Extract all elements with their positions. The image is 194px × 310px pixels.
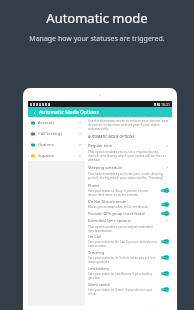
staticText: > (79, 153, 82, 158)
staticText: Sets your status to 'Busy' if you are on… (88, 189, 159, 197)
staticText: This option enables you to set your usua… (88, 172, 169, 180)
staticText: > (166, 165, 169, 170)
staticText: Extended Sync options (88, 218, 131, 223)
staticText: > (79, 131, 82, 136)
staticText: Used in Automatic mode to enforce your d… (88, 119, 169, 131)
staticText: AUTOMATIC MODE OPTIONS (88, 134, 135, 139)
staticText: Sets your status to Low Battery if your … (88, 272, 159, 280)
button[interactable]: Toggle (161, 202, 169, 207)
button[interactable]: Toggle (161, 271, 169, 276)
button[interactable]: Support (28, 150, 85, 161)
staticText: Sleeping schedule (88, 165, 122, 170)
button[interactable]: Do Not Disturb mode (88, 199, 169, 209)
button[interactable]: Toggle (161, 239, 169, 244)
button[interactable]: Navigate up (31, 109, 38, 116)
button[interactable]: Options (28, 139, 85, 150)
staticText: > (166, 218, 169, 223)
button[interactable]: Account (28, 117, 85, 128)
button[interactable]: Regular time (88, 142, 169, 149)
staticText: This option enables you to adjust extend… (88, 225, 169, 233)
button[interactable]: Toggle (161, 287, 169, 292)
button[interactable]: Call Settings (28, 128, 85, 139)
staticText: Traveling (88, 250, 105, 255)
staticText: Sets your status to On Call if you are a… (88, 240, 159, 248)
staticText: Account (38, 120, 54, 126)
staticText: > (166, 143, 169, 148)
staticText: > (79, 120, 82, 125)
button[interactable]: Toggle (161, 211, 169, 216)
staticText: Manage how your statuses are triggered. (29, 34, 165, 44)
staticText: Automatic Mode Options (39, 109, 99, 116)
staticText: Support (38, 153, 54, 159)
staticText: Sets your status to 'Silent' if your dev… (88, 288, 159, 296)
staticText: Marks you as away when in Do not disturb… (88, 205, 149, 209)
staticText: This option enables you to set a regular… (88, 150, 169, 162)
button[interactable]: Silent switch (88, 282, 169, 296)
staticText: Do Not Disturb mode (88, 199, 127, 204)
staticText: > (79, 142, 82, 147)
staticText: Low battery (88, 266, 110, 271)
button[interactable]: On Call (88, 234, 169, 248)
staticText: Periodic GPS group check (beta) (88, 211, 145, 216)
button[interactable]: Extended Sync options (88, 217, 169, 224)
staticText: Regular time (88, 143, 113, 148)
staticText: Phone (88, 183, 100, 188)
button[interactable]: Sleeping schedule (88, 164, 169, 171)
button[interactable]: Toggle (161, 188, 169, 193)
staticText: Sets your status to 'In Vehicle' while y… (88, 256, 159, 264)
button[interactable]: Periodic GPS group check (beta) (88, 211, 169, 216)
staticText: 10:21 (161, 102, 170, 107)
staticText: Silent switch (88, 282, 111, 287)
button[interactable]: Low battery (88, 266, 169, 280)
button[interactable]: Toggle (161, 255, 169, 260)
button[interactable]: Traveling (88, 250, 169, 264)
staticText: Call Settings (38, 131, 63, 137)
staticText: Automatic mode (46, 9, 148, 27)
button[interactable]: Phone (88, 183, 169, 197)
staticText: On Call (88, 234, 101, 239)
staticText: Options (38, 142, 54, 148)
